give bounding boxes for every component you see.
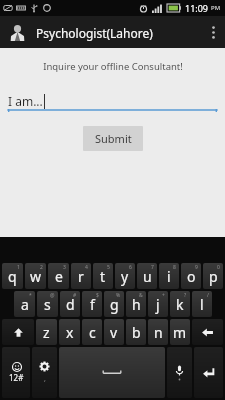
button[interactable]: c: [82, 319, 102, 345]
button[interactable]: ?: [170, 291, 190, 317]
staticText: f: [90, 295, 95, 314]
staticText: y: [121, 267, 129, 286]
staticText: g: [110, 295, 119, 314]
button[interactable]: &: [126, 291, 146, 317]
staticText: $: [96, 292, 99, 299]
staticText: r: [78, 267, 84, 286]
button[interactable]: 4: [71, 263, 91, 289]
staticText: Submit: [95, 131, 132, 146]
button[interactable]: Settings: [32, 347, 57, 398]
staticText: 0: [217, 264, 220, 271]
button[interactable]: n: [148, 319, 168, 345]
staticText: 12#: [9, 372, 24, 383]
button[interactable]: m: [170, 319, 190, 345]
staticText: Psychologist(Lahore): [36, 25, 153, 41]
staticText: w: [30, 267, 42, 286]
staticText: b: [132, 323, 141, 342]
staticText: j: [156, 295, 160, 314]
staticText: m: [173, 323, 187, 342]
button[interactable]: @: [37, 291, 58, 317]
staticText: /: [207, 292, 209, 299]
staticText: I am...: [8, 93, 43, 109]
button[interactable]: *: [14, 291, 35, 317]
staticText: x: [66, 323, 74, 342]
button[interactable]: #: [60, 291, 80, 317]
staticText: 2: [40, 264, 43, 271]
staticText: a: [21, 295, 29, 314]
button[interactable]: z: [36, 319, 57, 345]
staticText: u: [143, 267, 152, 286]
staticText: %: [116, 292, 121, 299]
staticText: s: [44, 295, 51, 314]
button[interactable]: Symbols: [2, 347, 30, 398]
staticText: 7: [151, 264, 154, 271]
button[interactable]: %: [104, 291, 124, 317]
staticText: n: [154, 323, 163, 342]
button[interactable]: I am...: [8, 90, 217, 112]
staticText: ,: [44, 374, 46, 384]
staticText: o: [187, 267, 196, 286]
staticText: t: [100, 267, 106, 286]
staticText: @: [50, 292, 55, 299]
staticText: l: [200, 295, 204, 314]
button[interactable]: More options: [201, 16, 225, 48]
button[interactable]: 3: [48, 263, 69, 289]
staticText: 8: [173, 264, 176, 271]
staticText: i: [167, 267, 171, 286]
staticText: 6: [129, 264, 132, 271]
staticText: *: [29, 292, 32, 299]
button[interactable]: Enter: [194, 347, 223, 398]
staticText: h: [132, 295, 141, 314]
button[interactable]: 2: [25, 263, 46, 289]
staticText: 3: [63, 264, 66, 271]
button[interactable]: 0: [203, 263, 223, 289]
button[interactable]: 5: [93, 263, 113, 289]
button[interactable]: 8: [159, 263, 179, 289]
staticText: k: [176, 295, 184, 314]
staticText: ?: [184, 292, 187, 299]
button[interactable]: Backspace: [192, 319, 223, 345]
button[interactable]: Voice input: [167, 347, 192, 398]
staticText: #: [73, 292, 77, 299]
staticText: 9: [195, 264, 198, 271]
button[interactable]: 1: [2, 263, 23, 289]
button[interactable]: +: [148, 291, 168, 317]
staticText: &: [139, 292, 143, 299]
staticText: Inquire your offline Consultant!: [43, 60, 183, 73]
staticText: 1: [17, 264, 20, 271]
button[interactable]: $: [82, 291, 102, 317]
staticText: q: [8, 267, 17, 286]
button[interactable]: x: [59, 319, 80, 345]
button[interactable]: 9: [181, 263, 201, 289]
button[interactable]: b: [126, 319, 146, 345]
staticText: c: [89, 323, 96, 342]
staticText: 4: [85, 264, 88, 271]
button[interactable]: Submit: [83, 126, 143, 151]
button[interactable]: v: [104, 319, 124, 345]
staticText: d: [66, 295, 75, 314]
staticText: z: [43, 323, 50, 342]
button[interactable]: Shift: [2, 319, 34, 345]
staticText: v: [110, 323, 118, 342]
staticText: PM: [211, 4, 221, 12]
staticText: e: [55, 267, 63, 286]
staticText: 5: [107, 264, 110, 271]
button[interactable]: Space: [59, 347, 165, 398]
button[interactable]: /: [192, 291, 212, 317]
staticText: p: [209, 267, 218, 286]
button[interactable]: 6: [115, 263, 135, 289]
staticText: 11:09: [185, 2, 209, 14]
staticText: +: [162, 292, 165, 299]
button[interactable]: 7: [137, 263, 157, 289]
